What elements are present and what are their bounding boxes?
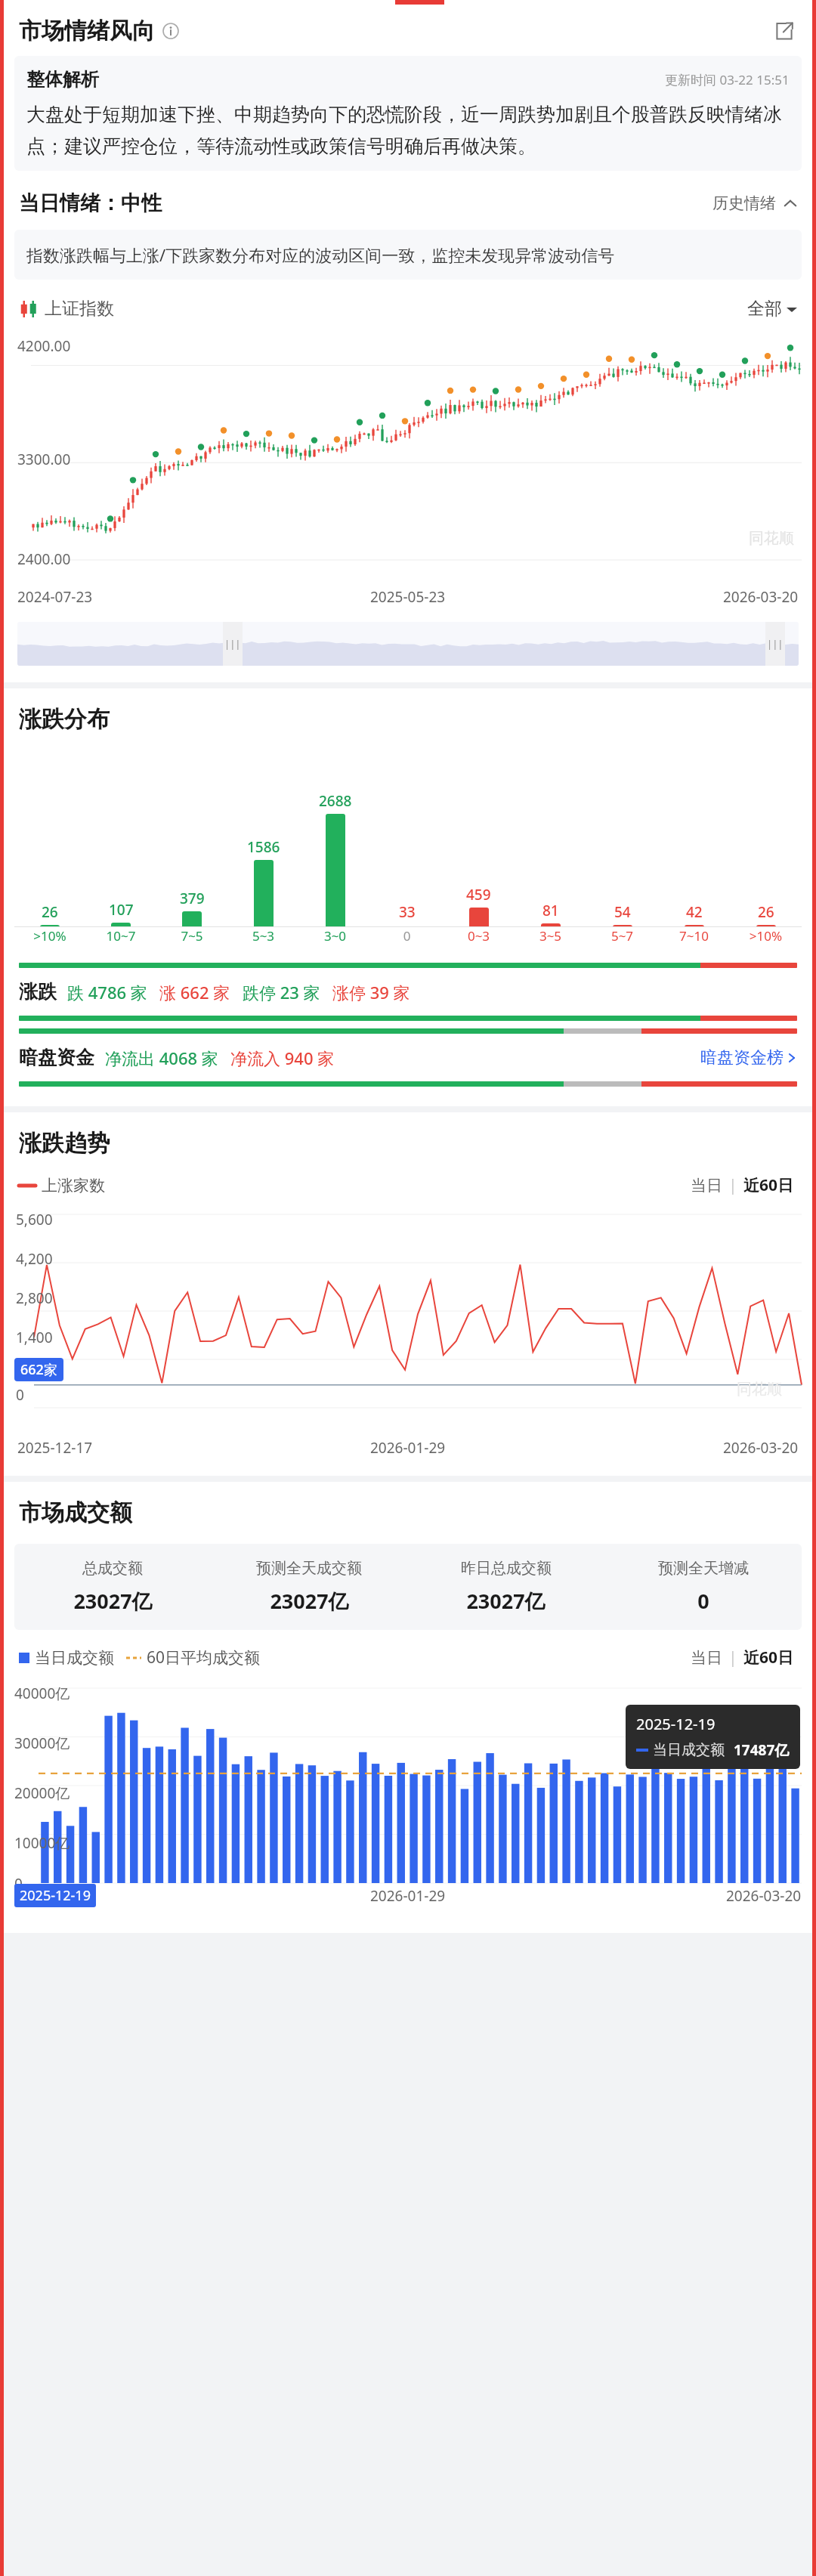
- staticText: 2026-01-29: [370, 1886, 446, 1906]
- button[interactable]: 涨跌: [4, 963, 812, 1021]
- staticText: 2025-12-17: [17, 1438, 93, 1458]
- staticText: 2,800: [16, 1288, 53, 1308]
- staticText: 当日: [691, 1648, 722, 1668]
- staticText: 0~3: [443, 927, 515, 945]
- staticText: 30000亿: [14, 1733, 70, 1753]
- staticText: 459: [466, 885, 491, 905]
- staticText: |: [728, 1647, 737, 1668]
- staticText: 总成交额: [82, 1559, 143, 1578]
- staticText: 近60日: [743, 1647, 794, 1668]
- staticText: 市场情绪风向: [19, 17, 155, 45]
- staticText: 净流出 4068 家: [105, 1047, 218, 1069]
- staticText: 26: [42, 902, 58, 922]
- staticText: 涨跌趋势: [19, 1129, 110, 1158]
- staticText: 3~0: [299, 927, 371, 945]
- staticText: 3300.00: [17, 450, 71, 469]
- staticText: 当日成交额: [653, 1741, 725, 1759]
- button[interactable]: 全部: [747, 298, 797, 320]
- button[interactable]: 暗盘资金: [4, 1028, 812, 1087]
- staticText: 上涨家数: [42, 1176, 105, 1195]
- staticText: 市场成交额: [19, 1498, 132, 1527]
- staticText: 净流入 940 家: [230, 1047, 335, 1069]
- staticText: 4200.00: [17, 336, 71, 356]
- staticText: 7~10: [658, 927, 730, 945]
- staticText: 4,200: [16, 1249, 53, 1269]
- staticText: 23027亿: [73, 1587, 153, 1615]
- staticText: >10%: [14, 927, 85, 945]
- staticText: 当日: [691, 1176, 722, 1195]
- staticText: 3~5: [515, 927, 586, 945]
- staticText: 1586: [247, 837, 280, 857]
- staticText: 全部: [747, 298, 782, 320]
- staticText: 0: [16, 1385, 24, 1405]
- staticText: 2025-05-23: [370, 587, 446, 607]
- staticText: 2024-07-23: [17, 587, 93, 607]
- staticText: 26: [758, 902, 774, 922]
- staticText: 7~5: [156, 927, 227, 945]
- staticText: 涨跌: [19, 980, 57, 1003]
- staticText: 2025-12-19: [20, 1886, 91, 1905]
- staticText: 1,400: [16, 1328, 53, 1347]
- button[interactable]: Share: [771, 18, 797, 44]
- staticText: 当日成交额: [35, 1648, 114, 1668]
- staticText: 33: [399, 902, 416, 922]
- button[interactable]: 当日情绪：中性: [4, 190, 812, 216]
- staticText: 2026-03-20: [723, 587, 799, 607]
- staticText: 23027亿: [466, 1587, 546, 1615]
- staticText: |||: [767, 637, 784, 651]
- staticText: 2400.00: [17, 549, 71, 569]
- staticText: 更新时间 03-22 15:51: [665, 71, 790, 88]
- staticText: 2026-03-20: [723, 1438, 799, 1458]
- staticText: 20000亿: [14, 1783, 70, 1803]
- staticText: 当日情绪：中性: [19, 190, 162, 216]
- staticText: 5,600: [16, 1210, 53, 1229]
- staticText: 同花顺: [737, 1380, 782, 1399]
- staticText: 暗盘资金: [19, 1046, 94, 1069]
- staticText: 昨日总成交额: [461, 1559, 552, 1578]
- staticText: 60日平均成交额: [147, 1647, 261, 1668]
- staticText: 指数涨跌幅与上涨/下跌家数分布对应的波动区间一致，监控未发现异常波动信号: [26, 243, 615, 266]
- staticText: 预测全天成交额: [256, 1559, 362, 1578]
- staticText: 23027亿: [270, 1587, 349, 1615]
- button[interactable]: 市场情绪风向: [4, 11, 812, 51]
- staticText: 历史情绪: [712, 193, 776, 213]
- staticText: 81: [542, 901, 559, 920]
- staticText: 2025-12-19: [636, 1714, 716, 1734]
- button[interactable]: 近60日: [740, 1647, 797, 1668]
- staticText: 5~7: [586, 927, 658, 945]
- staticText: |||: [224, 637, 241, 651]
- staticText: 预测全天增减: [658, 1559, 749, 1578]
- staticText: 54: [614, 902, 631, 922]
- staticText: 0: [697, 1587, 709, 1615]
- staticText: 整体解析: [26, 68, 99, 91]
- staticText: 0: [14, 1874, 23, 1894]
- staticText: 10~7: [85, 927, 156, 945]
- staticText: |: [728, 1174, 737, 1196]
- staticText: 10000亿: [14, 1833, 70, 1853]
- staticText: 107: [109, 900, 134, 920]
- staticText: 暗盘资金榜: [700, 1047, 784, 1068]
- staticText: 0: [371, 927, 443, 945]
- staticText: >10%: [730, 927, 802, 945]
- button[interactable]: 近60日: [740, 1174, 797, 1196]
- staticText: 5~3: [227, 927, 299, 945]
- staticText: 涨跌分布: [19, 705, 110, 734]
- staticText: 662家: [20, 1360, 57, 1379]
- staticText: 近60日: [743, 1174, 794, 1196]
- staticText: 2026-03-20: [726, 1886, 802, 1906]
- staticText: 同花顺: [749, 529, 794, 548]
- staticText: 379: [180, 889, 205, 908]
- staticText: 2026-01-29: [370, 1438, 446, 1458]
- button[interactable]: 当日: [688, 1648, 725, 1668]
- button[interactable]: 当日: [688, 1176, 725, 1195]
- staticText: 跌 4786 家: [67, 981, 147, 1003]
- staticText: 40000亿: [14, 1684, 70, 1703]
- staticText: 涨停 39 家: [332, 981, 410, 1003]
- staticText: 跌停 23 家: [243, 981, 320, 1003]
- staticText: 2688: [319, 791, 352, 811]
- staticText: 17487亿: [734, 1740, 790, 1760]
- staticText: 涨 662 家: [159, 981, 230, 1003]
- staticText: 上证指数: [45, 298, 114, 320]
- staticText: 42: [686, 902, 703, 922]
- staticText: 大盘处于短期加速下挫、中期趋势向下的恐慌阶段，近一周跌势加剧且个股普跌反映情绪冰…: [26, 103, 790, 159]
